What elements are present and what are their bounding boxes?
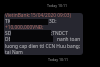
staticText: tai Nam (5, 49, 23, 55)
staticText: +10,000,000VNÐ; (5, 24, 44, 31)
staticText: nanh toan (57, 36, 81, 43)
staticText: :TNDCT (51, 30, 68, 37)
button[interactable]: VietinBank:15/04/2020 09:03) (4, 13, 83, 55)
staticText: DEH (5, 36, 15, 43)
staticText: TK: (5, 18, 12, 25)
staticText: Today 10:11 (48, 57, 69, 62)
staticText: 3D: (49, 18, 57, 25)
staticText: VietinBank:15/04/2020 09:03) (5, 13, 71, 19)
staticText: Today 10:11 (47, 3, 68, 8)
staticText: luong cap dien ttl CCN Huu bang; (5, 43, 80, 50)
staticText: SDC: (5, 30, 16, 37)
